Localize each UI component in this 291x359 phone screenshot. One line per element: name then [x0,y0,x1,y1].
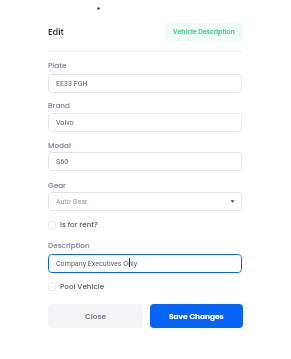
other: pointer [97,7,100,10]
staticText: Gear [48,180,66,190]
button[interactable]: Company Executives Only [48,254,242,273]
staticText: S60 [56,157,69,165]
staticText: Save Changes [169,311,224,321]
staticText: Auto Gear [56,197,88,205]
staticText: Brand [48,100,71,110]
staticText: Close [85,311,107,321]
staticText: Edit [48,26,64,38]
button[interactable]: Volvo [48,113,242,132]
staticText: Pool Vehicle [60,281,105,291]
button[interactable]: EE33 FGH [48,74,242,93]
staticText: EE33 FGH [56,79,88,87]
staticText: Modal [48,140,71,150]
staticText: Company Executives Only [56,259,138,267]
staticText: Volvo [56,118,74,126]
staticText: Plate [48,60,67,70]
staticText: Is for rent? [60,219,98,229]
button[interactable]: Auto Gear [48,192,242,211]
button[interactable]: Save Changes [150,304,243,328]
button[interactable]: Is for rent? [48,220,98,230]
button[interactable]: Close [48,304,143,328]
staticText: Description [48,240,90,250]
button[interactable]: S60 [48,152,242,171]
button[interactable]: Vehicle Description [165,23,243,41]
staticText: Vehicle Description [173,27,235,36]
button[interactable]: Pool Vehicle [48,282,105,292]
